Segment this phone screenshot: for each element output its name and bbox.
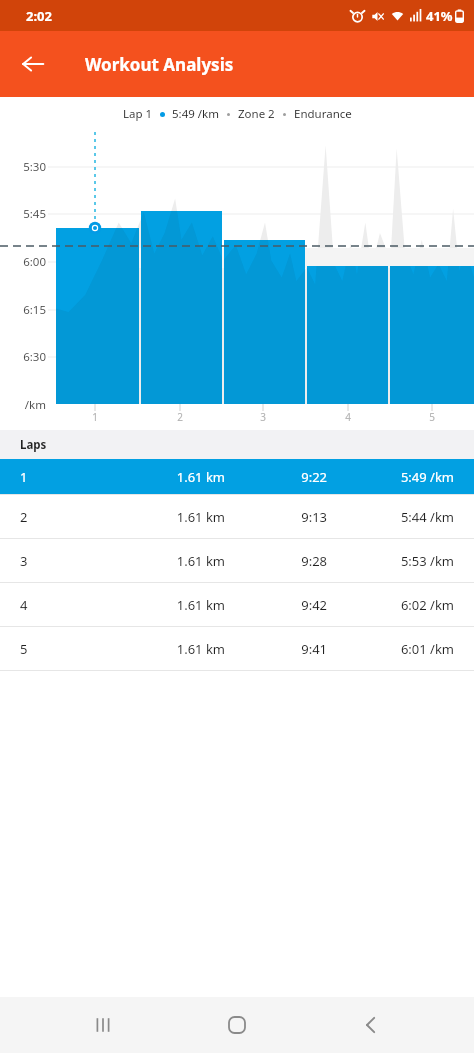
staticText: 1.61 km — [114, 468, 225, 486]
staticText: 5:53 /km — [327, 552, 454, 570]
button[interactable]: Home — [206, 997, 268, 1053]
staticText: 2 — [20, 508, 114, 526]
staticText: 5:44 /km — [327, 508, 454, 526]
staticText: 2:02 — [26, 7, 52, 25]
button[interactable]: 1 — [0, 459, 474, 494]
staticText: Endurance — [294, 106, 352, 122]
staticText: 3 — [20, 552, 114, 570]
staticText: Laps — [20, 437, 47, 453]
staticText: 5:49 /km — [327, 468, 454, 486]
staticText: 1.61 km — [114, 596, 225, 614]
staticText: 6:30 — [0, 349, 46, 365]
button[interactable]: Back — [10, 41, 56, 87]
staticText: 4 — [336, 410, 360, 424]
staticText: 1 — [20, 468, 114, 486]
staticText: 1 — [83, 410, 107, 424]
staticText: 41% — [426, 7, 453, 25]
staticText: 1.61 km — [114, 552, 225, 570]
staticText: 9:41 — [225, 640, 327, 658]
staticText: 6:00 — [0, 254, 46, 270]
button[interactable]: 2 — [0, 495, 474, 538]
staticText: Workout Analysis — [85, 53, 234, 76]
staticText: 1.61 km — [114, 508, 225, 526]
staticText: 4 — [20, 596, 114, 614]
staticText: 5 — [420, 410, 444, 424]
staticText: 9:22 — [225, 468, 327, 486]
staticText: 1.61 km — [114, 640, 225, 658]
staticText: 3 — [251, 410, 275, 424]
staticText: /km — [0, 397, 46, 413]
staticText: 6:02 /km — [327, 596, 454, 614]
staticText: 6:15 — [0, 302, 46, 318]
staticText: 9:13 — [225, 508, 327, 526]
staticText: 6:01 /km — [327, 640, 454, 658]
button[interactable]: 4 — [0, 583, 474, 626]
staticText: Lap 1 — [123, 106, 153, 122]
staticText: 2 — [168, 410, 192, 424]
button[interactable]: Recent apps — [72, 997, 134, 1053]
staticText: Zone 2 — [238, 106, 275, 122]
button[interactable]: 3 — [0, 539, 474, 582]
staticText: 5 — [20, 640, 114, 658]
button[interactable]: Back — [340, 997, 402, 1053]
button[interactable]: 5 — [0, 627, 474, 670]
staticText: 9:28 — [225, 552, 327, 570]
staticText: 5:49 /km — [172, 106, 219, 122]
staticText: 9:42 — [225, 596, 327, 614]
staticText: 5:45 — [0, 206, 46, 222]
staticText: 5:30 — [0, 159, 46, 175]
